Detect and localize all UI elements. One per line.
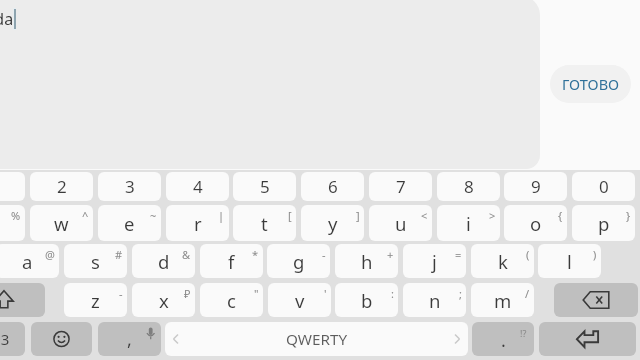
button[interactable]: 0	[572, 172, 635, 201]
staticText: l	[567, 249, 572, 274]
button[interactable]: 2	[30, 172, 93, 201]
button[interactable]: y	[301, 205, 364, 241]
button[interactable]: c	[200, 283, 263, 317]
button[interactable]: z	[64, 283, 127, 317]
button[interactable]: e	[98, 205, 161, 241]
button[interactable]: l	[538, 244, 601, 278]
staticText: a	[22, 249, 33, 274]
button[interactable]: Backspace	[554, 283, 638, 317]
staticText: )	[593, 247, 597, 262]
button[interactable]: k	[471, 244, 534, 278]
staticText: #	[115, 247, 123, 262]
button[interactable]: 9	[504, 172, 567, 201]
button[interactable]: g	[267, 244, 330, 278]
button[interactable]: r	[166, 205, 229, 241]
staticText: 8	[464, 175, 474, 198]
staticText: u	[395, 211, 407, 236]
button[interactable]: a	[0, 244, 59, 278]
button[interactable]: ГОТОВО	[550, 65, 631, 103]
staticText: w	[54, 211, 69, 236]
staticText: (	[526, 247, 530, 262]
staticText: 4	[193, 175, 203, 198]
button[interactable]: QWERTY	[165, 322, 468, 356]
staticText: i	[466, 211, 471, 236]
staticText: :	[391, 286, 394, 301]
staticText: -	[322, 247, 326, 262]
button[interactable]: d	[132, 244, 195, 278]
staticText: m	[494, 288, 512, 313]
staticText: /	[525, 286, 530, 301]
staticText: z	[91, 288, 100, 313]
staticText: s	[91, 249, 100, 274]
staticText: 3	[125, 175, 135, 198]
staticText: 7	[396, 175, 406, 198]
staticText: h	[361, 249, 373, 274]
staticText: <	[421, 208, 428, 223]
button[interactable]: Period	[472, 322, 534, 356]
staticText: QWERTY	[286, 329, 348, 350]
staticText: *	[252, 247, 259, 262]
button[interactable]: i	[437, 205, 500, 241]
staticText: v	[295, 288, 305, 313]
staticText: p	[598, 211, 610, 236]
staticText: ~	[150, 208, 157, 223]
staticText: @	[45, 247, 55, 262]
button[interactable]: w	[30, 205, 93, 241]
button[interactable]: 5	[233, 172, 296, 201]
staticText: d	[158, 249, 170, 274]
staticText: 9	[531, 175, 541, 198]
staticText: ГОТОВО	[562, 74, 620, 94]
button[interactable]: o	[504, 205, 567, 241]
staticText: g	[293, 249, 305, 274]
staticText: e	[124, 211, 135, 236]
staticText: b	[361, 288, 373, 313]
staticText: 2	[57, 175, 67, 198]
staticText: j	[432, 249, 437, 274]
staticText: +	[387, 247, 394, 262]
staticText: -	[119, 286, 123, 301]
staticText: [	[288, 208, 292, 223]
button[interactable]: 6	[301, 172, 364, 201]
staticText: t	[261, 211, 268, 236]
button[interactable]: t	[233, 205, 296, 241]
button[interactable]: q	[0, 205, 25, 241]
button[interactable]: Emoji	[31, 322, 92, 356]
staticText: !?	[520, 327, 527, 339]
staticText: n	[429, 288, 441, 313]
staticText: =	[455, 247, 462, 262]
button[interactable]: x	[132, 283, 195, 317]
staticText: o	[530, 211, 542, 236]
staticText: ^	[82, 208, 89, 223]
button[interactable]: n	[403, 283, 466, 317]
staticText: k	[498, 249, 508, 274]
button[interactable]: Comma, voice input	[98, 322, 161, 356]
button[interactable]: j	[403, 244, 466, 278]
button[interactable]: b	[335, 283, 398, 317]
button[interactable]: h	[335, 244, 398, 278]
button[interactable]: 3	[98, 172, 161, 201]
staticText: Privetda	[0, 8, 14, 30]
staticText: ₽	[184, 286, 191, 301]
staticText: %	[11, 208, 21, 223]
button[interactable]: m	[471, 283, 534, 317]
staticText: |	[218, 208, 225, 223]
staticText: ?123	[0, 329, 10, 349]
staticText: &	[182, 247, 191, 262]
staticText: y	[328, 211, 338, 236]
staticText: {	[558, 208, 563, 223]
button[interactable]: 1	[0, 172, 25, 201]
button[interactable]: v	[268, 283, 331, 317]
button[interactable]: s	[64, 244, 127, 278]
staticText: .	[501, 328, 506, 353]
button[interactable]: Shift	[0, 283, 45, 317]
button[interactable]: ?123	[0, 322, 25, 356]
button[interactable]: 4	[166, 172, 229, 201]
button[interactable]: 7	[369, 172, 432, 201]
button[interactable]: f	[200, 244, 263, 278]
staticText: ]	[356, 208, 360, 223]
button[interactable]: p	[572, 205, 635, 241]
staticText: ,	[127, 327, 132, 352]
button[interactable]: Enter	[539, 322, 636, 356]
button[interactable]: u	[369, 205, 432, 241]
button[interactable]: 8	[437, 172, 500, 201]
